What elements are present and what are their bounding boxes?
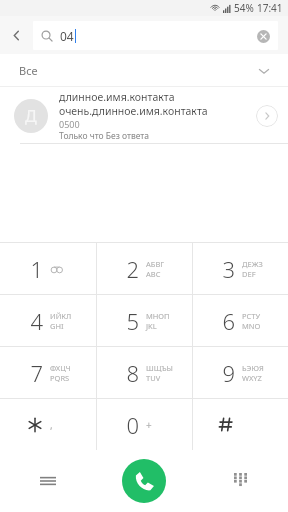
staticText: 5: [126, 306, 139, 336]
staticText: 54%: [234, 1, 254, 15]
staticText: 1: [30, 254, 43, 284]
staticText: 2: [126, 254, 139, 284]
staticText: АБВГ: [146, 259, 165, 269]
staticText: DEF: [242, 269, 256, 279]
staticText: ФХЦЧ: [50, 363, 71, 373]
staticText: 0: [126, 410, 139, 440]
staticText: +: [146, 418, 152, 432]
staticText: Только что Без ответа: [59, 130, 150, 142]
button[interactable]: 3: [193, 243, 288, 294]
staticText: ШЩЪЫ: [146, 363, 173, 373]
staticText: 17:41: [257, 1, 283, 15]
staticText: 04: [60, 28, 74, 44]
staticText: 6: [222, 306, 235, 336]
button[interactable]: Call: [122, 459, 166, 503]
button[interactable]: Back: [0, 16, 33, 54]
staticText: ,: [50, 418, 53, 432]
button[interactable]: Все: [0, 54, 288, 87]
staticText: ДЕЖЗ: [242, 259, 263, 269]
staticText: MNO: [242, 321, 261, 331]
staticText: 3: [222, 254, 235, 284]
button[interactable]: ,: [0, 399, 96, 450]
staticText: Все: [19, 63, 38, 78]
button[interactable]: 9: [193, 347, 288, 398]
staticText: GHI: [50, 321, 64, 331]
button[interactable]: 1: [0, 243, 96, 294]
button[interactable]: 4: [0, 295, 96, 346]
staticText: РСТУ: [242, 311, 261, 321]
staticText: JKL: [146, 321, 157, 331]
button[interactable]: [193, 399, 288, 450]
staticText: TUV: [146, 373, 161, 383]
staticText: МНОП: [146, 311, 170, 321]
button[interactable]: 6: [193, 295, 288, 346]
staticText: ЬЭЮЯ: [242, 363, 264, 373]
staticText: 4: [30, 306, 43, 336]
button[interactable]: 2: [97, 243, 192, 294]
staticText: ABC: [146, 269, 161, 279]
button[interactable]: Dialpad: [192, 450, 288, 512]
button[interactable]: 5: [97, 295, 192, 346]
button[interactable]: Details: [256, 105, 278, 127]
button[interactable]: 8: [97, 347, 192, 398]
button[interactable]: 7: [0, 347, 96, 398]
button[interactable]: 0: [97, 399, 192, 450]
staticText: PQRS: [50, 373, 70, 383]
staticText: 0500: [59, 118, 80, 130]
staticText: WXYZ: [242, 373, 262, 383]
button[interactable]: 04: [33, 21, 278, 50]
staticText: очень.длинное.имя.контакта: [59, 104, 208, 118]
staticText: 8: [126, 358, 139, 388]
button[interactable]: Д: [0, 87, 288, 144]
button[interactable]: Clear: [256, 29, 270, 43]
staticText: длинное.имя.контакта: [59, 90, 175, 104]
staticText: Д: [25, 105, 37, 127]
staticText: ИЙКЛ: [50, 311, 72, 321]
button[interactable]: Menu: [0, 450, 96, 512]
staticText: 9: [222, 358, 235, 388]
staticText: 7: [30, 358, 43, 388]
